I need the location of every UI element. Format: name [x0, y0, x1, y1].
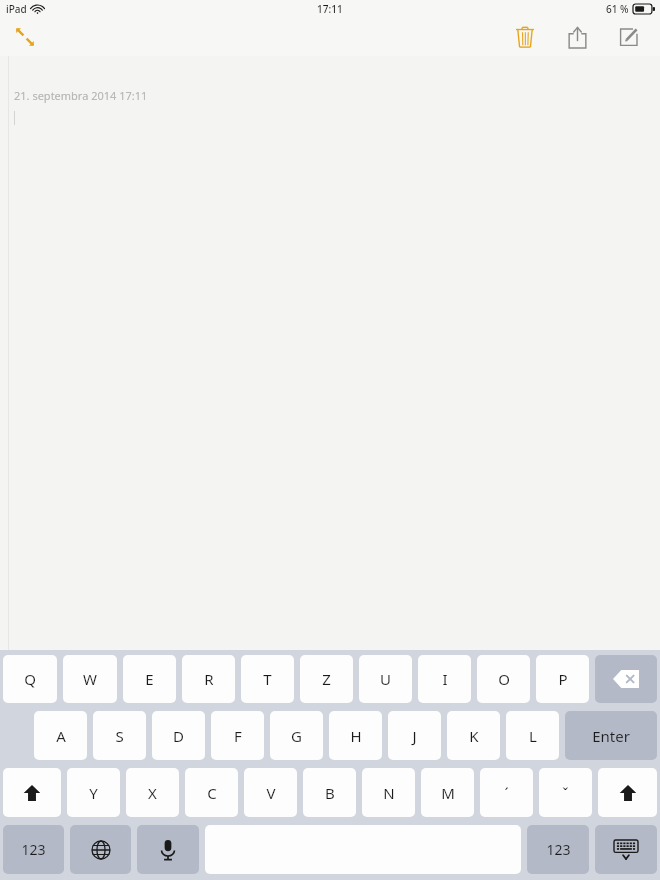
button[interactable]: U: [359, 655, 412, 703]
button[interactable]: 123: [3, 825, 64, 874]
staticText: A: [56, 726, 66, 746]
button[interactable]: O: [477, 655, 530, 703]
staticText: L: [529, 726, 537, 746]
button[interactable]: 123: [527, 825, 589, 874]
button[interactable]: Y: [67, 768, 120, 817]
button[interactable]: Share: [560, 20, 594, 54]
staticText: D: [173, 726, 184, 746]
staticText: Z: [322, 669, 331, 689]
button[interactable]: V: [244, 768, 297, 817]
button[interactable]: Shift: [598, 768, 657, 817]
staticText: ´: [504, 783, 509, 803]
staticText: N: [383, 783, 395, 803]
button[interactable]: New note: [612, 20, 646, 54]
staticText: X: [148, 783, 157, 803]
button[interactable]: ´: [480, 768, 533, 817]
button[interactable]: Hide keyboard: [595, 825, 657, 874]
staticText: U: [380, 669, 391, 689]
staticText: Q: [24, 669, 36, 689]
button[interactable]: J: [388, 711, 441, 760]
button[interactable]: S: [93, 711, 146, 760]
button[interactable]: Collapse note list: [10, 22, 40, 52]
button[interactable]: Dictation: [137, 825, 199, 874]
staticText: 123: [21, 840, 46, 859]
staticText: ˇ: [562, 783, 569, 803]
staticText: B: [325, 783, 335, 803]
staticText: Y: [89, 783, 98, 803]
button[interactable]: Next keyboard: [70, 825, 131, 874]
staticText: Enter: [592, 726, 630, 746]
button[interactable]: K: [447, 711, 500, 760]
button[interactable]: M: [421, 768, 474, 817]
button[interactable]: X: [126, 768, 179, 817]
button[interactable]: T: [241, 655, 294, 703]
staticText: 61 %: [606, 2, 629, 16]
button[interactable]: Delete: [508, 20, 542, 54]
staticText: W: [83, 669, 97, 689]
staticText: E: [145, 669, 154, 689]
button[interactable]: P: [536, 655, 589, 703]
staticText: G: [291, 726, 302, 746]
staticText: M: [441, 783, 455, 803]
staticText: R: [204, 669, 214, 689]
button[interactable]: Enter: [565, 711, 657, 760]
button[interactable]: H: [329, 711, 382, 760]
button[interactable]: Shift: [3, 768, 61, 817]
staticText: 123: [546, 840, 571, 859]
button[interactable]: Z: [300, 655, 353, 703]
button[interactable]: R: [182, 655, 235, 703]
staticText: P: [558, 669, 568, 689]
button[interactable]: F: [211, 711, 264, 760]
staticText: F: [234, 726, 242, 746]
staticText: H: [350, 726, 362, 746]
button[interactable]: Q: [3, 655, 57, 703]
button[interactable]: D: [152, 711, 205, 760]
button[interactable]: E: [123, 655, 176, 703]
staticText: 17:11: [317, 2, 343, 16]
button[interactable]: W: [63, 655, 117, 703]
staticText: J: [412, 726, 417, 746]
staticText: S: [115, 726, 124, 746]
staticText: V: [266, 783, 276, 803]
button[interactable]: Backspace: [595, 655, 657, 703]
staticText: K: [469, 726, 479, 746]
staticText: 21. septembra 2014 17:11: [14, 88, 148, 103]
button[interactable]: N: [362, 768, 415, 817]
staticText: T: [263, 669, 272, 689]
staticText: iPad: [6, 2, 27, 16]
button[interactable]: C: [185, 768, 238, 817]
staticText: O: [498, 669, 510, 689]
button[interactable]: B: [303, 768, 356, 817]
staticText: C: [207, 783, 217, 803]
button[interactable]: A: [34, 711, 87, 760]
button[interactable]: L: [506, 711, 559, 760]
button[interactable]: G: [270, 711, 323, 760]
button[interactable]: ˇ: [539, 768, 592, 817]
staticText: I: [442, 669, 448, 689]
button[interactable]: I: [418, 655, 471, 703]
